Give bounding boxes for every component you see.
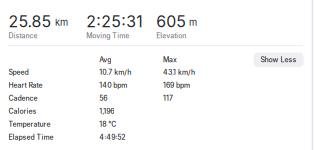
staticText: Elevation [156, 31, 186, 40]
staticText: Elapsed Time [9, 133, 54, 141]
staticText: Max [163, 56, 177, 64]
staticText: 56 [99, 94, 107, 102]
staticText: 18 °C [99, 120, 116, 128]
button[interactable]: Show Less [254, 53, 304, 67]
staticText: 10.7 km/h [99, 68, 131, 76]
staticText: 117 [163, 94, 173, 102]
staticText: 4:49:52 [99, 133, 125, 141]
staticText: 1,196 [99, 107, 114, 115]
staticText: km [55, 17, 68, 28]
staticText: Distance [8, 31, 37, 40]
staticText: m [189, 17, 197, 28]
staticText: 605 [156, 12, 186, 31]
staticText: Moving Time [86, 31, 129, 40]
staticText: 140 bpm [99, 81, 127, 89]
staticText: 2:25:31 [86, 12, 142, 31]
staticText: 25.85 [8, 12, 51, 31]
staticText: Temperature [9, 120, 51, 128]
staticText: Show Less [261, 56, 297, 64]
staticText: Speed [9, 68, 29, 76]
staticText: Calories [9, 107, 37, 115]
staticText: Cadence [9, 94, 38, 102]
staticText: Heart Rate [9, 81, 43, 89]
staticText: Avg [99, 56, 111, 64]
staticText: 43.1 km/h [163, 68, 195, 76]
staticText: 169 bpm [163, 81, 190, 89]
